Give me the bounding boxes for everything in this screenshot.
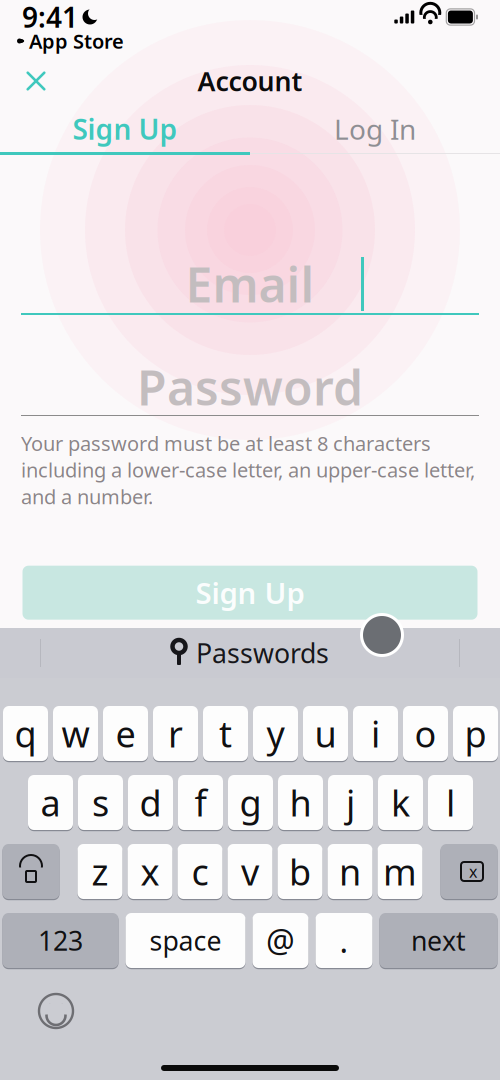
button[interactable]: w bbox=[53, 705, 98, 762]
staticText: m bbox=[383, 848, 417, 895]
staticText: Your password must be at least 8 charact… bbox=[21, 430, 475, 510]
button[interactable]: l bbox=[428, 774, 473, 831]
button[interactable]: g bbox=[228, 774, 273, 831]
staticText: d bbox=[139, 779, 161, 826]
staticText: h bbox=[289, 779, 311, 826]
button[interactable]: @ bbox=[252, 912, 308, 969]
button[interactable]: f bbox=[178, 774, 223, 831]
staticText: v bbox=[241, 848, 259, 895]
staticText: p bbox=[464, 710, 486, 757]
button[interactable]: h bbox=[278, 774, 323, 831]
staticText: Email bbox=[185, 252, 314, 316]
staticText: t bbox=[219, 710, 232, 757]
button[interactable]: e bbox=[103, 705, 148, 762]
button[interactable]: j bbox=[328, 774, 373, 831]
staticText: q bbox=[14, 710, 36, 757]
staticText: Sign Up bbox=[72, 110, 177, 148]
button[interactable]: c bbox=[177, 843, 222, 900]
button[interactable]: z bbox=[77, 843, 122, 900]
button[interactable]: i bbox=[353, 705, 398, 762]
button[interactable]: o bbox=[403, 705, 448, 762]
button[interactable]: Delete bbox=[440, 843, 497, 900]
staticText: space bbox=[149, 923, 221, 958]
button[interactable]: u bbox=[303, 705, 348, 762]
staticText: k bbox=[391, 779, 410, 826]
button[interactable]: space bbox=[125, 912, 245, 969]
button[interactable]: a bbox=[28, 774, 73, 831]
staticText: u bbox=[314, 710, 336, 757]
staticText: . bbox=[339, 919, 348, 962]
staticText: r bbox=[168, 710, 183, 757]
button[interactable]: d bbox=[128, 774, 173, 831]
staticText: a bbox=[40, 779, 60, 826]
staticText: App Store bbox=[29, 28, 124, 54]
button[interactable]: . bbox=[315, 912, 372, 969]
staticText: s bbox=[92, 779, 109, 826]
staticText: w bbox=[61, 710, 89, 757]
staticText: Sign Up bbox=[195, 573, 304, 612]
button[interactable]: 123 bbox=[2, 912, 118, 969]
staticText: z bbox=[91, 848, 108, 895]
button[interactable]: y bbox=[253, 705, 298, 762]
button[interactable]: p bbox=[453, 705, 498, 762]
button[interactable]: next bbox=[379, 912, 497, 969]
button[interactable]: Log In bbox=[250, 106, 500, 152]
staticText: x bbox=[469, 861, 477, 882]
button[interactable]: m bbox=[377, 843, 422, 900]
button[interactable]: x bbox=[127, 843, 172, 900]
button[interactable]: Shift bbox=[2, 843, 59, 900]
staticText: Account bbox=[197, 63, 302, 99]
staticText: x bbox=[140, 848, 159, 895]
staticText: n bbox=[339, 848, 361, 895]
staticText: f bbox=[194, 779, 206, 826]
button[interactable]: q bbox=[3, 705, 48, 762]
staticText: j bbox=[346, 779, 355, 826]
staticText: 9:41 bbox=[22, 0, 78, 36]
button[interactable]: Close bbox=[12, 59, 60, 103]
button[interactable]: r bbox=[153, 705, 198, 762]
button[interactable]: n bbox=[327, 843, 372, 900]
staticText: y bbox=[266, 710, 284, 757]
staticText: c bbox=[191, 848, 208, 895]
staticText: i bbox=[371, 710, 380, 757]
staticText: b bbox=[289, 848, 311, 895]
staticText: e bbox=[115, 710, 135, 757]
button[interactable]: Passwords bbox=[171, 631, 329, 675]
button[interactable]: Sign Up bbox=[0, 106, 250, 152]
staticText: Password bbox=[137, 355, 363, 419]
staticText: l bbox=[446, 779, 455, 826]
button[interactable]: k bbox=[378, 774, 423, 831]
staticText: o bbox=[414, 710, 436, 757]
button[interactable]: Emoji keyboard bbox=[32, 989, 80, 1033]
button[interactable]: Back to App Store bbox=[0, 30, 500, 52]
staticText: Passwords bbox=[196, 635, 329, 671]
button[interactable]: v bbox=[227, 843, 272, 900]
staticText: @ bbox=[266, 919, 295, 962]
staticText: Log In bbox=[334, 110, 416, 148]
staticText: 123 bbox=[38, 923, 83, 958]
button[interactable]: Sign Up bbox=[22, 566, 477, 620]
button[interactable]: t bbox=[203, 705, 248, 762]
button[interactable]: b bbox=[277, 843, 322, 900]
staticText: next bbox=[411, 923, 466, 958]
button[interactable]: s bbox=[78, 774, 123, 831]
staticText: g bbox=[239, 779, 261, 826]
